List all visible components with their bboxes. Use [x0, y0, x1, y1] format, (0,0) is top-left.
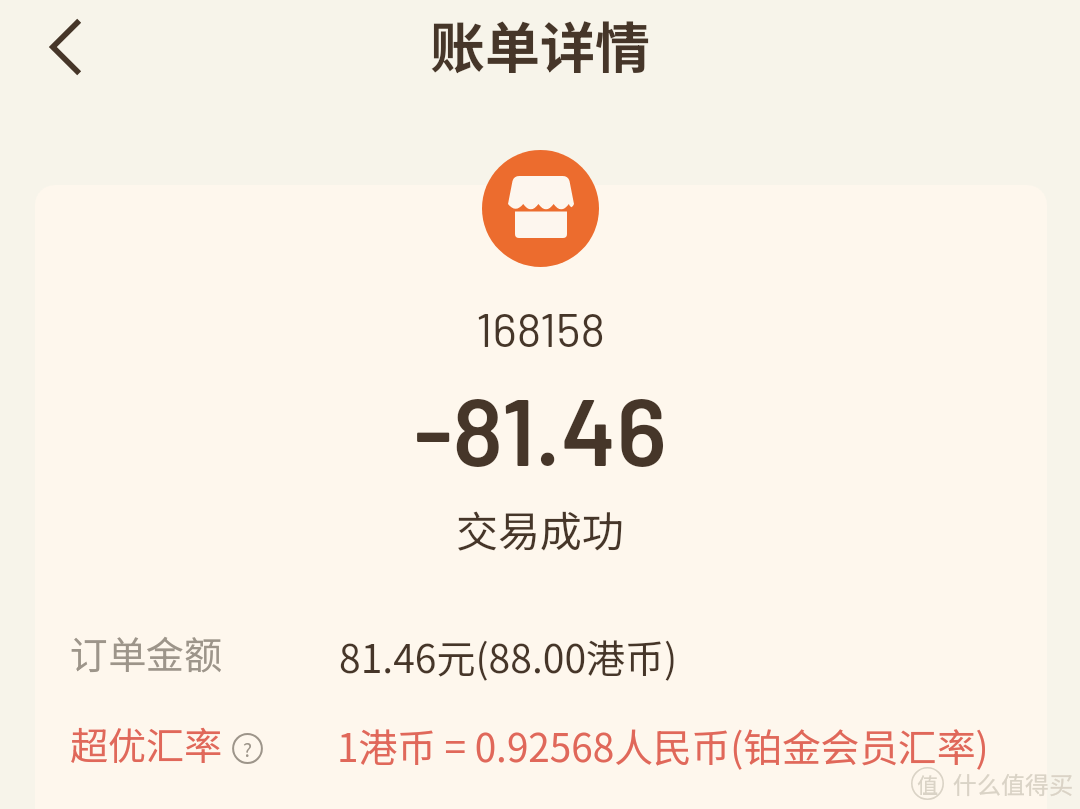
staticText: 账单详情: [430, 4, 651, 84]
staticText: 1港币 = 0.92568人民币(铂金会员汇率): [337, 717, 989, 773]
button[interactable]: Back: [35, 17, 95, 77]
staticText: 81.46元(88.00港币): [339, 628, 678, 684]
staticText: 168158: [476, 300, 605, 356]
other: What is this: [232, 733, 263, 764]
staticText: -81.46: [414, 371, 667, 485]
button[interactable]: Merchant: [482, 150, 599, 267]
staticText: 订单金额: [70, 625, 223, 680]
staticText: ?: [243, 735, 253, 763]
staticText: 交易成功: [456, 498, 625, 559]
staticText: 值: [917, 769, 938, 799]
staticText: 什么值得买: [953, 766, 1073, 801]
button[interactable]: 超优汇率: [70, 716, 263, 771]
staticText: 超优汇率: [70, 716, 223, 771]
